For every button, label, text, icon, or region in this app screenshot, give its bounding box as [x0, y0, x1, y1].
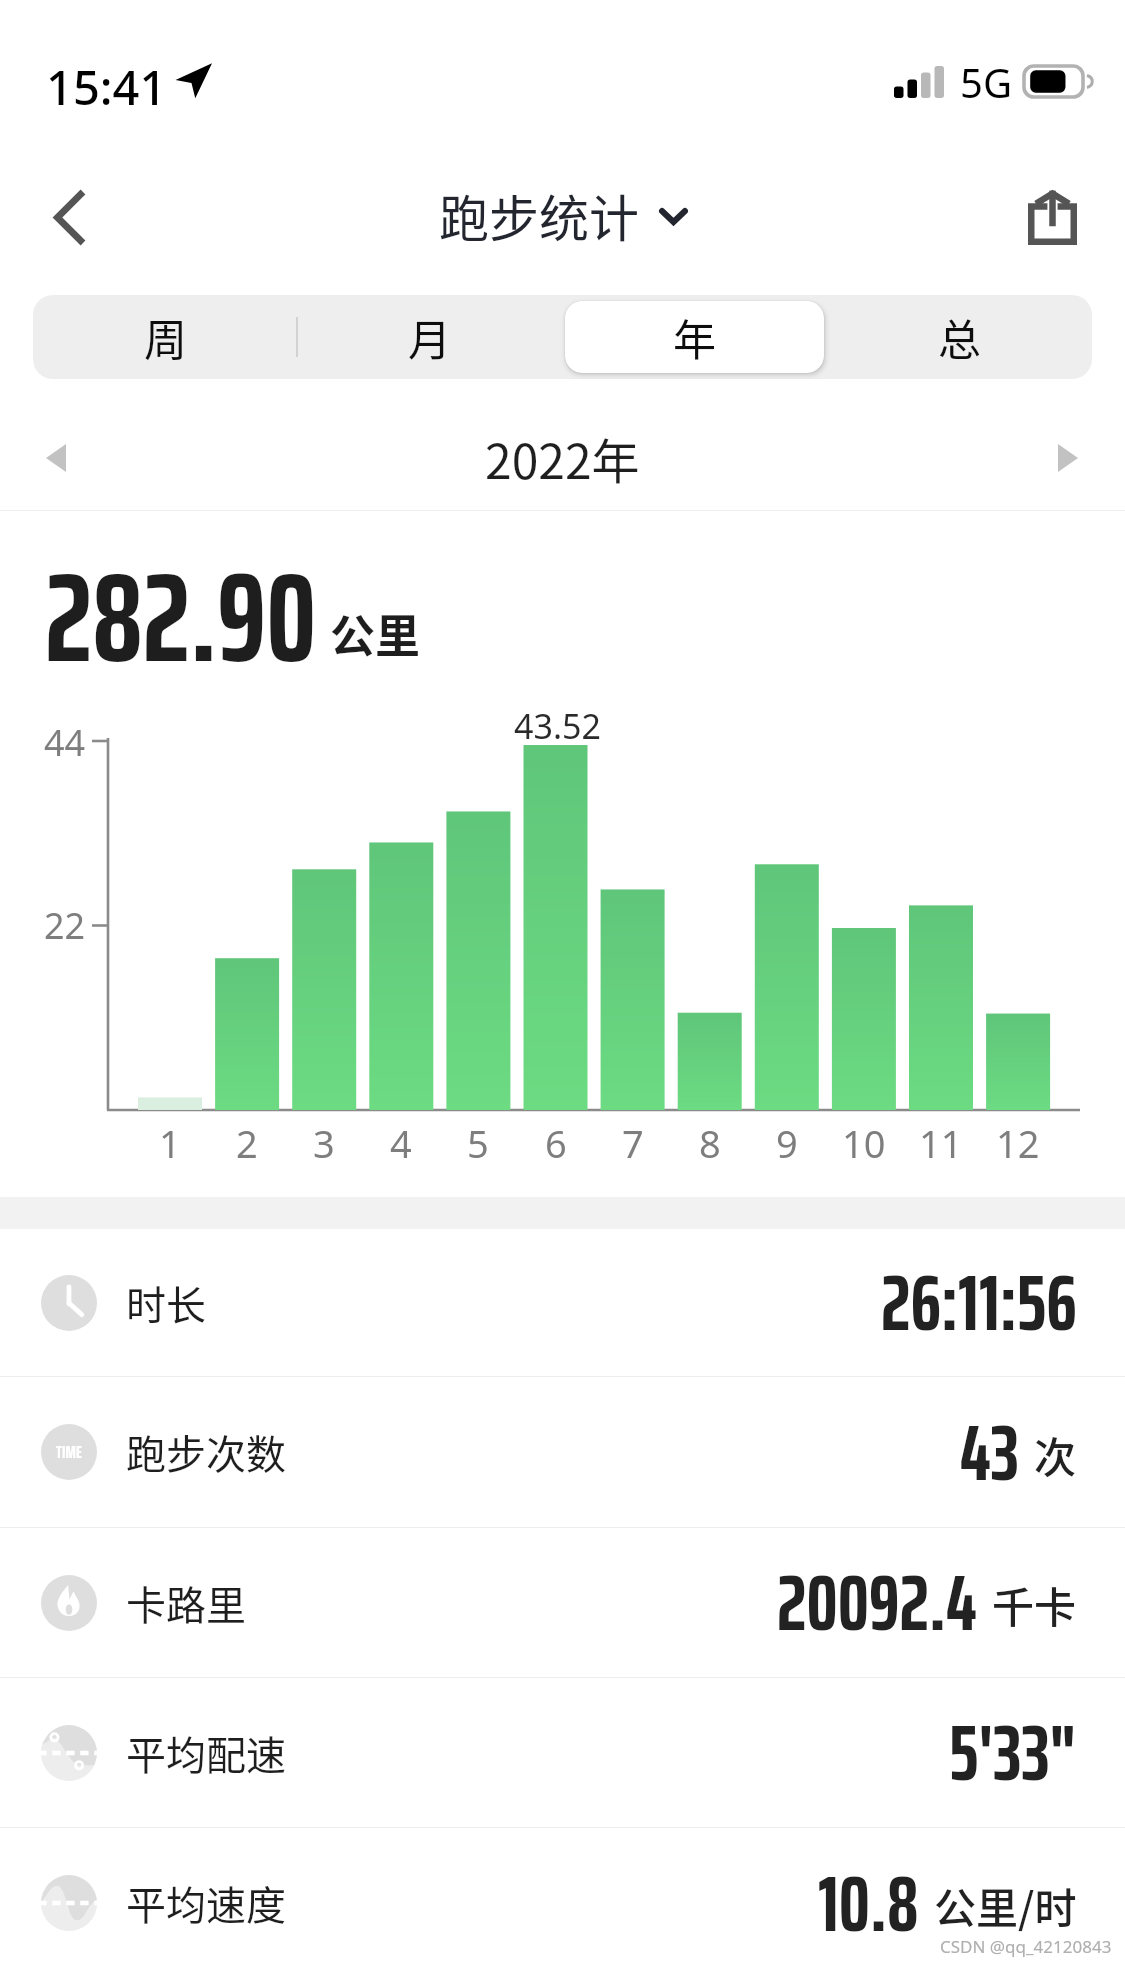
- staticText: 总: [938, 306, 981, 368]
- staticText: 282.90: [45, 519, 317, 716]
- staticText: CSDN @qq_42120843: [940, 1935, 1112, 1958]
- button[interactable]: 跑步统计: [439, 179, 688, 251]
- button[interactable]: 总: [830, 301, 1089, 373]
- staticText: 5'33": [949, 1691, 1077, 1814]
- staticText: 公里/时: [934, 1875, 1077, 1936]
- staticText: 26:11:56: [881, 1241, 1077, 1364]
- staticText: 22: [44, 901, 86, 950]
- staticText: 周: [144, 306, 187, 368]
- button[interactable]: 周: [36, 301, 294, 373]
- staticText: 跑步次数: [126, 1423, 286, 1481]
- staticText: 5G: [960, 55, 1012, 109]
- staticText: TIME: [56, 1439, 82, 1466]
- button[interactable]: 月: [300, 301, 559, 373]
- staticText: 次: [1034, 1424, 1077, 1485]
- staticText: 2: [236, 1117, 258, 1169]
- staticText: 3: [313, 1117, 335, 1169]
- staticText: 4: [390, 1117, 412, 1169]
- staticText: 2022年: [485, 423, 640, 493]
- staticText: 平均配速: [126, 1724, 286, 1782]
- button[interactable]: 卡路里: [0, 1528, 1125, 1677]
- staticText: 时长: [126, 1274, 206, 1332]
- staticText: 6: [545, 1117, 567, 1169]
- staticText: 千卡: [992, 1574, 1077, 1635]
- button[interactable]: Share: [987, 152, 1117, 282]
- button[interactable]: 时长: [0, 1229, 1125, 1376]
- staticText: 43.52: [514, 703, 601, 749]
- staticText: 月: [408, 306, 451, 368]
- staticText: 20092.4: [777, 1541, 977, 1664]
- button[interactable]: Previous year: [16, 405, 96, 510]
- staticText: 5: [467, 1117, 489, 1169]
- staticText: 跑步统计: [439, 179, 639, 251]
- button[interactable]: Next year: [1028, 405, 1108, 510]
- button[interactable]: Back: [4, 152, 134, 282]
- staticText: 8: [699, 1117, 721, 1169]
- button[interactable]: 年: [565, 301, 824, 373]
- button[interactable]: TIME: [0, 1377, 1125, 1527]
- staticText: 15:41: [46, 55, 167, 119]
- staticText: 9: [776, 1117, 798, 1169]
- staticText: 1: [159, 1117, 181, 1169]
- button[interactable]: 平均速度: [0, 1828, 1125, 1967]
- staticText: 卡路里: [126, 1574, 246, 1632]
- staticText: 公里: [330, 601, 421, 666]
- staticText: 年: [673, 306, 716, 368]
- staticText: 44: [44, 718, 86, 767]
- staticText: 7: [622, 1117, 644, 1169]
- staticText: 43: [960, 1391, 1019, 1514]
- staticText: 12: [996, 1117, 1040, 1169]
- staticText: 11: [919, 1117, 963, 1169]
- staticText: 10.8: [818, 1842, 919, 1965]
- button[interactable]: 平均配速: [0, 1678, 1125, 1827]
- staticText: 10: [842, 1117, 886, 1169]
- staticText: 平均速度: [126, 1874, 286, 1932]
